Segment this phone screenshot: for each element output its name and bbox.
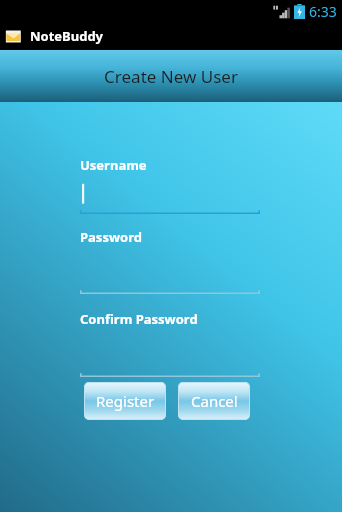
staticText: Create New User: [104, 65, 238, 88]
staticText: NoteBuddy: [30, 27, 104, 45]
button[interactable]: Cancel: [178, 382, 250, 420]
button[interactable]: [80, 334, 260, 366]
staticText: Register: [96, 391, 155, 411]
staticText: Username: [80, 156, 147, 174]
staticText: Confirm Password: [80, 310, 198, 328]
button[interactable]: [80, 252, 260, 284]
staticText: 6:33: [309, 2, 337, 21]
button[interactable]: [80, 180, 260, 212]
button[interactable]: Register: [84, 382, 166, 420]
staticText: Password: [80, 228, 142, 246]
staticText: Cancel: [191, 391, 238, 411]
